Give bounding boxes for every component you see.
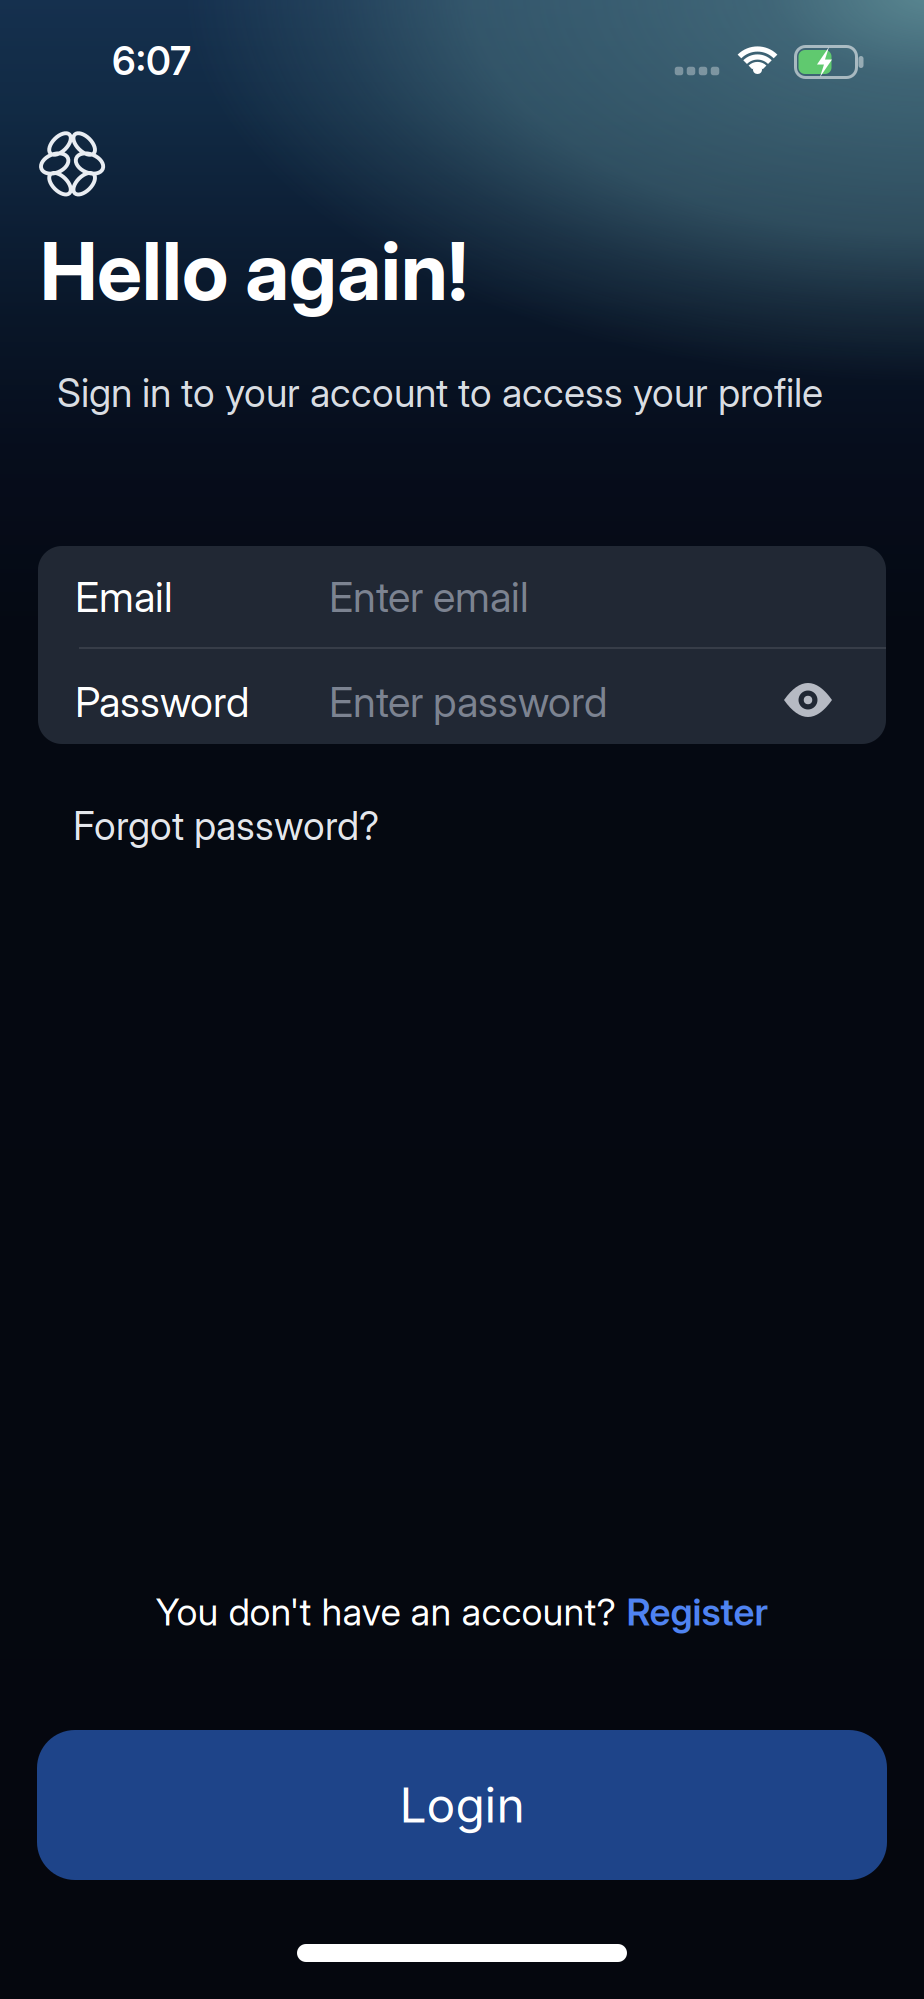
staticText: Password (75, 678, 249, 726)
staticText: Enter email (329, 573, 529, 621)
staticText: 6:07 (112, 38, 191, 84)
staticText: Forgot password? (73, 803, 379, 849)
button[interactable] (780, 680, 836, 720)
button[interactable]: Register (626, 1590, 768, 1634)
staticText: Hello again! (40, 223, 468, 319)
staticText: Login (399, 1777, 524, 1833)
button[interactable]: Forgot password? (73, 803, 379, 849)
staticText: Sign in to your account to access your p… (57, 370, 823, 416)
staticText: Email (75, 573, 173, 621)
button[interactable]: Login (37, 1730, 887, 1880)
staticText: Register (626, 1590, 768, 1634)
staticText: Enter password (329, 678, 607, 726)
staticText: You don't have an account? (155, 1590, 615, 1634)
